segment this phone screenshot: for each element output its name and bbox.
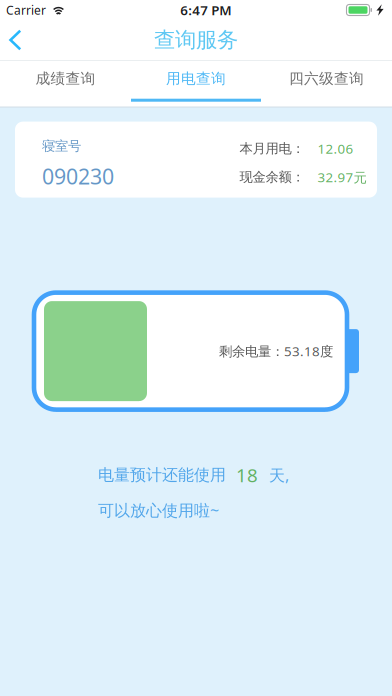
staticText: Carrier <box>6 2 46 18</box>
staticText: 18 <box>236 463 258 487</box>
staticText: 32.97元 <box>317 168 366 186</box>
staticText: 寝室号 <box>42 138 81 154</box>
staticText: 本月用电： <box>239 140 304 157</box>
staticText: 6:47 PM <box>180 1 231 19</box>
staticText: 可以放心使用啦~ <box>98 499 219 521</box>
staticText: 成绩查询 <box>35 70 95 88</box>
staticText: 查询服务 <box>154 27 238 53</box>
staticText: 12.06 <box>317 140 353 157</box>
staticText: 天, <box>269 464 289 486</box>
staticText: 电量预计还能使用 <box>98 465 226 485</box>
staticText: 现金余额： <box>239 169 304 185</box>
button[interactable]: Back <box>0 20 46 60</box>
button[interactable]: 用电查询 <box>131 61 261 107</box>
staticText: 剩余电量：53.18度 <box>219 342 333 360</box>
button[interactable]: 四六级查询 <box>261 61 392 107</box>
staticText: 四六级查询 <box>289 70 364 88</box>
staticText: 090230 <box>42 162 114 190</box>
button[interactable]: 成绩查询 <box>0 61 131 107</box>
staticText: 用电查询 <box>166 70 226 88</box>
